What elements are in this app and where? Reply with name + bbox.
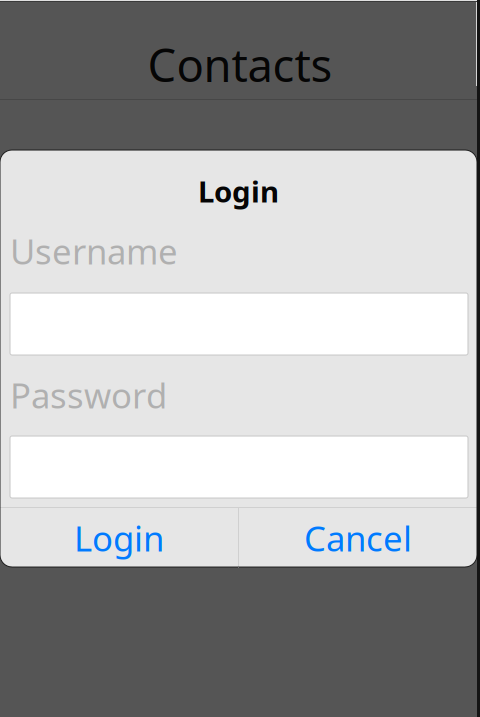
staticText: Login [74,515,164,561]
button[interactable]: Username field [10,293,468,355]
staticText: Cancel [304,515,412,561]
button[interactable]: Password field [10,436,468,498]
staticText: Login [198,171,279,210]
button[interactable]: Cancel [239,508,477,568]
staticText: Password [10,372,167,418]
staticText: Contacts [147,34,332,95]
button[interactable]: Login [0,508,238,568]
staticText: Username [10,228,178,274]
